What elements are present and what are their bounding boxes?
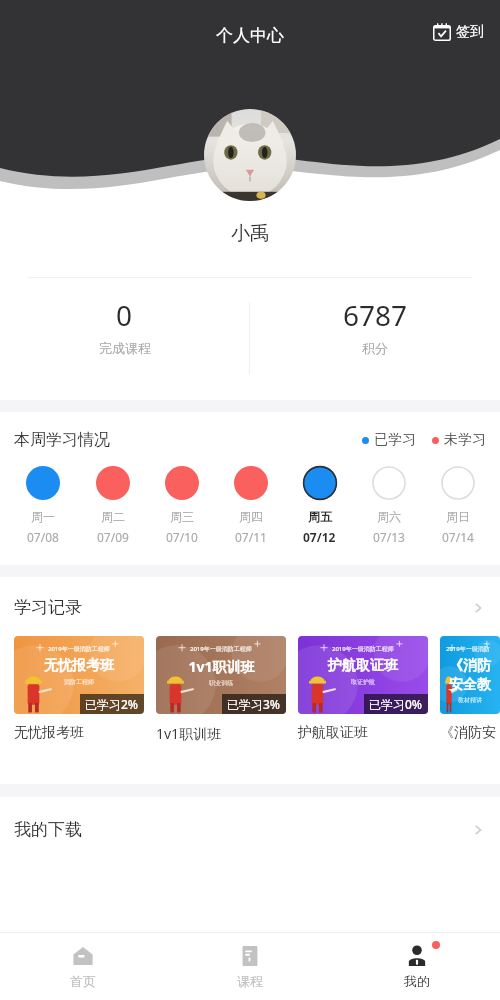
staticText: 我的 [404,973,430,989]
staticText: 2019年一级消防工程师 [190,645,252,653]
staticText: 取证护航 [351,678,375,686]
staticText: 已学习 [374,431,416,449]
staticText: 已学习3% [227,696,281,712]
button[interactable]: Courses [166,933,333,1000]
staticText: 护航取证班 [298,724,428,742]
button[interactable]: 周二 [78,466,147,545]
button[interactable]: 0 [0,296,249,356]
other: Mine [405,944,429,968]
other: Courses [238,944,262,968]
staticText: 课程 [237,973,263,989]
staticText: 2019年一级消防工程师 [446,645,494,653]
staticText: 1v1职训班 [156,724,286,743]
button[interactable]: Mine [333,933,500,1000]
staticText: 周一 [31,509,55,524]
button[interactable]: 周日 [423,466,492,545]
button[interactable]: 周五 [285,466,354,545]
staticText: 周二 [101,509,125,524]
button[interactable]: 学习记录 [0,577,500,636]
staticText: 周日 [446,509,470,524]
staticText: 未学习 [444,431,486,449]
staticText: 护航取证班 [328,657,398,675]
staticText: 07/12 [303,529,336,545]
staticText: 学习记录 [14,597,82,618]
button[interactable]: 2019年一级消防工程师 [298,636,428,742]
staticText: 完成课程 [99,340,151,356]
staticText: 1v1职训班 [188,657,255,676]
button[interactable]: 周一 [8,466,78,545]
button[interactable]: 2019年一级消防工程师 [440,636,500,742]
staticText: 周六 [377,509,401,524]
staticText: 2019年一级消防工程师 [332,645,394,653]
staticText: 本周学习情况 [14,430,110,450]
staticText: 无忧报考班 [14,724,144,742]
staticText: 07/10 [166,529,198,545]
staticText: 首页 [70,973,96,989]
button[interactable]: Home [0,933,166,1000]
staticText: 小禹 [231,222,269,246]
button[interactable]: 签到 [429,20,488,44]
staticText: 周五 [308,509,332,524]
staticText: 6787 [343,296,408,334]
button[interactable]: 周三 [147,466,216,545]
button[interactable]: 2019年一级消防工程师 [14,636,144,742]
button[interactable]: 周六 [354,466,423,545]
button[interactable]: 2019年一级消防工程师 [156,636,286,743]
staticText: 0 [116,296,133,334]
staticText: 《消防安全教材 [446,657,494,693]
staticText: 个人中心 [216,25,284,46]
staticText: 教材精讲 [458,696,482,704]
staticText: 07/14 [442,529,474,545]
staticText: 已学习2% [85,696,139,712]
staticText: 已学习0% [369,696,423,712]
staticText: 2019年一级消防工程师 [48,645,110,653]
staticText: 周三 [170,509,194,524]
staticText: 07/11 [235,529,267,545]
staticText: 周四 [239,509,263,524]
staticText: 消防工程师 [64,678,94,686]
staticText: 07/09 [97,529,129,545]
button[interactable]: 6787 [250,296,500,356]
button[interactable]: 我的下载 [0,797,500,862]
button[interactable]: Profile photo [204,109,296,201]
staticText: 07/08 [27,529,59,545]
staticText: 无忧报考班 [44,657,114,675]
staticText: 我的下载 [14,819,82,840]
staticText: 《消防安全 [440,724,500,742]
staticText: 签到 [456,23,484,41]
button[interactable]: 周四 [216,466,285,545]
other: More [470,822,486,838]
other: Home [71,944,95,968]
staticText: 07/13 [373,529,405,545]
staticText: 积分 [362,340,388,356]
other: More [470,600,486,616]
staticText: 职业训练 [209,679,233,687]
